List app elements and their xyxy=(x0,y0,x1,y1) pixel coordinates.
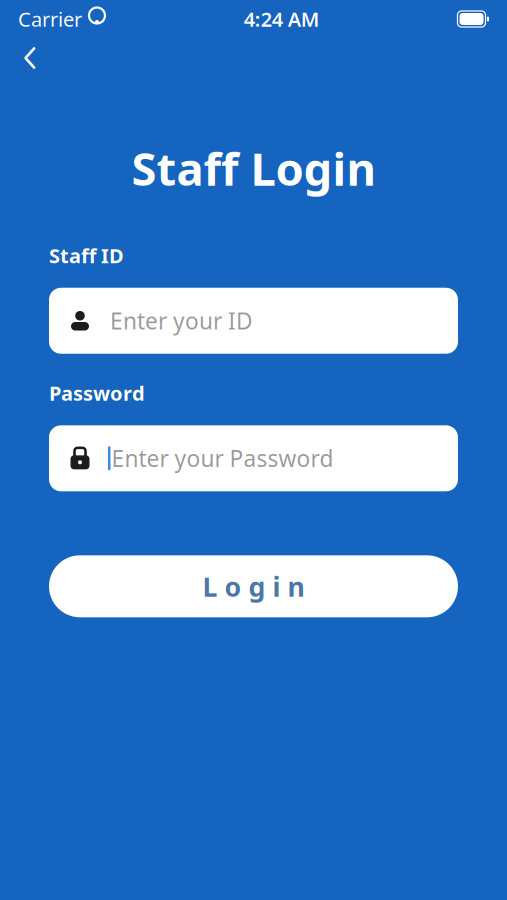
staticText: L o g i n xyxy=(202,569,304,604)
staticText: Password xyxy=(49,380,145,406)
staticText: Staff Login xyxy=(131,138,375,198)
button[interactable]: Back xyxy=(8,36,52,80)
staticText: 4:24 AM xyxy=(244,6,320,32)
button[interactable]: L o g i n xyxy=(49,555,458,617)
button[interactable]: Enter your Password xyxy=(49,425,458,491)
staticText: Enter your Password xyxy=(111,443,333,473)
staticText: Staff ID xyxy=(49,242,124,269)
button[interactable]: Enter your ID xyxy=(49,288,458,354)
staticText: Enter your ID xyxy=(110,306,253,336)
staticText: Carrier xyxy=(18,6,82,32)
